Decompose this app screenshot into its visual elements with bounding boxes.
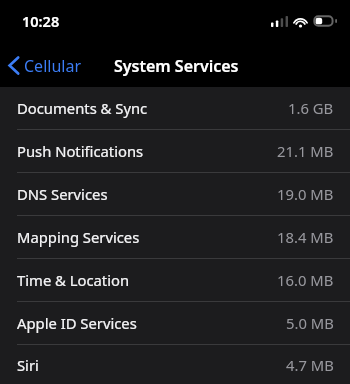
button[interactable]: Mapping Services [0, 216, 350, 258]
staticText: Cellular [24, 55, 81, 77]
staticText: 10:28 [22, 11, 60, 31]
staticText: 4.7 MB [286, 355, 334, 375]
staticText: Apple ID Services [17, 313, 137, 333]
button[interactable]: Push Notifications [0, 130, 350, 172]
staticText: 19.0 MB [277, 184, 334, 204]
staticText: 18.4 MB [277, 227, 334, 247]
button[interactable]: Back [0, 44, 91, 87]
button[interactable]: Apple ID Services [0, 302, 350, 344]
button[interactable]: Time & Location [0, 259, 350, 301]
staticText: Time & Location [17, 270, 130, 290]
other: Wi-Fi [293, 16, 308, 27]
other: Back [8, 56, 20, 75]
staticText: 1.6 GB [288, 98, 334, 118]
staticText: Siri [17, 355, 39, 375]
staticText: Push Notifications [17, 141, 144, 161]
staticText: Documents & Sync [17, 98, 148, 118]
button[interactable]: Siri [0, 345, 350, 384]
other: Cellular signal [271, 16, 288, 27]
other: Battery [313, 15, 337, 27]
staticText: Mapping Services [17, 227, 140, 247]
button[interactable]: Documents & Sync [0, 87, 350, 129]
staticText: System Services [114, 55, 239, 77]
staticText: 16.0 MB [277, 270, 334, 290]
button[interactable]: DNS Services [0, 173, 350, 215]
staticText: 21.1 MB [277, 141, 334, 161]
staticText: DNS Services [17, 184, 108, 204]
staticText: 5.0 MB [286, 313, 334, 333]
